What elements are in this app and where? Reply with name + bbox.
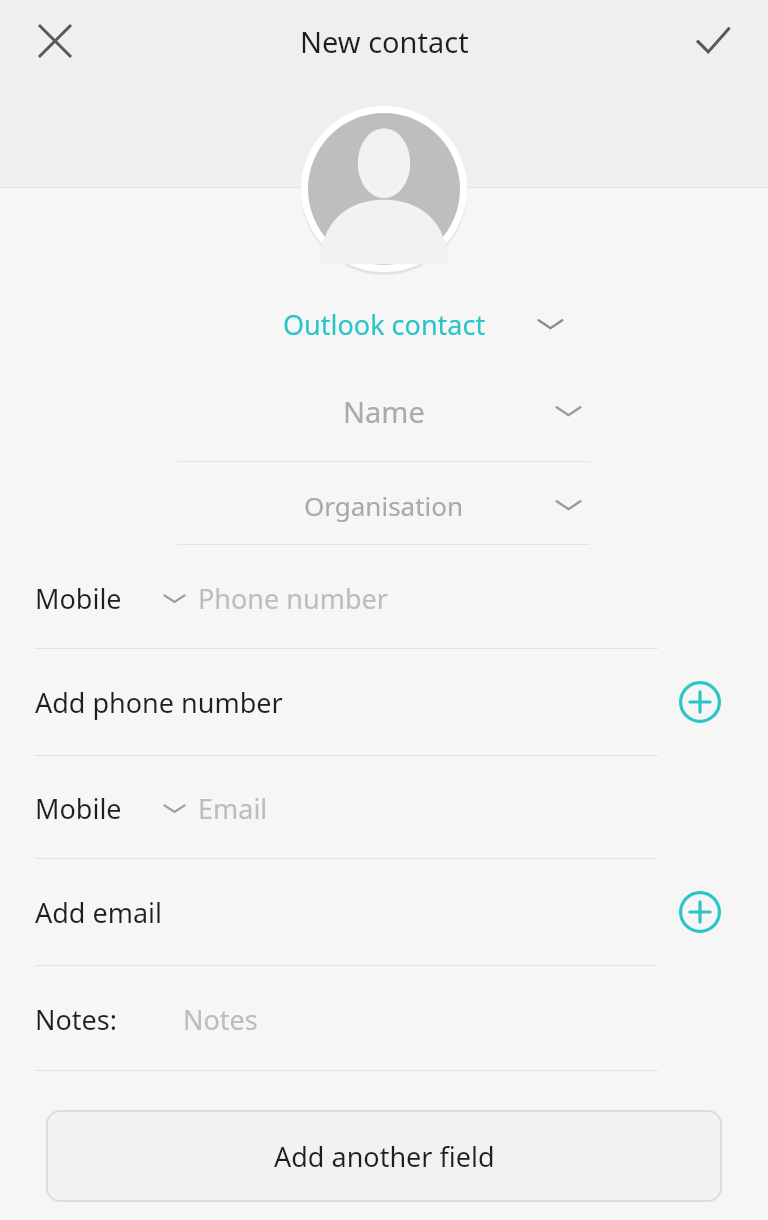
staticText: Outlook contact [283,306,486,343]
button[interactable]: Close [21,7,89,75]
button[interactable]: Add [672,884,728,940]
staticText: Email [198,790,268,827]
button[interactable]: Name [0,382,768,440]
staticText: Mobile [35,580,122,617]
staticText: Name [343,392,425,431]
staticText: Add email [35,894,163,931]
staticText: Phone number [198,580,388,617]
staticText: Notes: [35,1001,117,1038]
staticText: Notes [183,1001,258,1038]
button[interactable]: Organisation [0,476,768,534]
button[interactable]: Mobile [0,775,768,841]
staticText: Add phone number [35,684,283,721]
button[interactable]: Mobile [0,565,768,631]
button[interactable]: Add email [0,859,768,965]
staticText: Mobile [35,790,122,827]
staticText: Organisation [304,488,464,523]
button[interactable]: Notes: [0,986,768,1052]
button[interactable]: Contact photo [301,106,467,272]
button[interactable]: Add [672,674,728,730]
button[interactable]: Add another field [46,1110,722,1202]
staticText: New contact [300,22,469,61]
button[interactable]: Outlook contact [0,296,768,352]
button[interactable]: Add phone number [0,649,768,755]
staticText: Add another field [274,1138,495,1175]
button[interactable]: Save [679,7,747,75]
